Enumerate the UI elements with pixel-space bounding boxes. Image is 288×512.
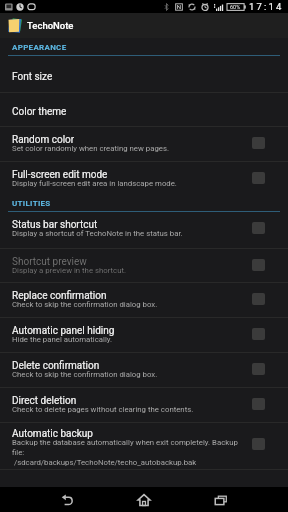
staticText: Status bar shortcut (12, 219, 98, 231)
staticText: Check to delete pages without clearing t… (12, 405, 194, 414)
staticText: Automatic backup (12, 428, 93, 440)
staticText: Direct deletion (12, 395, 77, 407)
button[interactable]: Font size (0, 56, 288, 92)
staticText: Check to skip the confirmation dialog bo… (12, 370, 158, 379)
button[interactable]: Full-screen edit mode (0, 162, 288, 194)
button[interactable]: Home (117, 487, 171, 512)
staticText: Automatic panel hiding (12, 325, 115, 337)
button[interactable]: Direct deletion (0, 388, 288, 422)
staticText: Font size (12, 71, 53, 83)
staticText: Check to skip the confirmation dialog bo… (12, 300, 158, 309)
button[interactable]: TechoNote (0, 13, 288, 38)
button[interactable]: Random color (0, 127, 288, 161)
staticText: Hide the panel automatically. (12, 335, 113, 344)
staticText: Shortcut preview (12, 256, 87, 268)
staticText: UTILITIES (12, 199, 51, 208)
staticText: TechoNote (27, 20, 74, 31)
staticText: Replace confirmation (12, 290, 107, 302)
button[interactable]: Recent apps (194, 487, 248, 512)
staticText: Display full-screen edit area in landsca… (12, 179, 177, 188)
staticText: Color theme (12, 106, 67, 118)
button[interactable]: Automatic backup (0, 423, 288, 469)
staticText: Full-screen edit mode (12, 169, 108, 181)
button[interactable]: Color theme (0, 93, 288, 126)
staticText: APPEARANCE (12, 43, 67, 52)
staticText: Display a shortcut of TechoNote in the s… (12, 229, 183, 238)
button[interactable]: Back (40, 487, 94, 512)
button[interactable]: Automatic panel hiding (0, 318, 288, 352)
staticText: Delete confirmation (12, 360, 100, 372)
staticText: 60% (230, 4, 241, 10)
staticText: Display a preview in the shortcut. (12, 266, 127, 275)
button[interactable]: Delete confirmation (0, 353, 288, 387)
staticText: Set color randomly when creating new pag… (12, 144, 169, 153)
staticText: Backup the database automatically when e… (12, 438, 244, 467)
button[interactable]: Replace confirmation (0, 283, 288, 317)
staticText: 17:14 (249, 1, 284, 12)
staticText: Random color (12, 134, 75, 146)
button[interactable]: Shortcut preview (0, 249, 288, 282)
button[interactable]: Status bar shortcut (0, 212, 288, 248)
